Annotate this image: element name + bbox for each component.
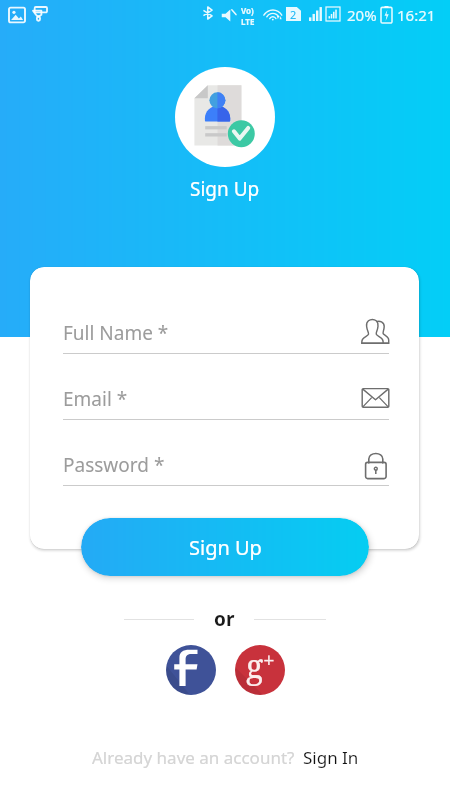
staticText: 2: [290, 7, 297, 21]
button[interactable]: Email *: [63, 382, 389, 415]
staticText: Sign Up: [189, 534, 262, 561]
staticText: Vo): [241, 5, 254, 16]
button[interactable]: Sign Up: [81, 518, 369, 576]
staticText: Email *: [63, 386, 128, 412]
staticText: Sign In: [303, 746, 359, 769]
button[interactable]: Sign up with Google Plus: [235, 645, 285, 695]
button[interactable]: Full Name *: [63, 316, 389, 349]
staticText: 20%: [347, 5, 377, 25]
staticText: Password *: [63, 452, 165, 478]
staticText: or: [214, 606, 235, 632]
staticText: g: [246, 645, 264, 688]
staticText: Full Name *: [63, 320, 169, 346]
staticText: 16:21: [397, 5, 436, 25]
button[interactable]: Sign up with Facebook: [166, 645, 216, 695]
staticText: +: [263, 646, 275, 675]
button[interactable]: Sign In: [303, 746, 359, 769]
staticText: Already have an account?: [92, 746, 295, 769]
staticText: Sign Up: [190, 176, 260, 202]
staticText: LTE: [241, 16, 255, 27]
button[interactable]: Password *: [63, 448, 389, 481]
